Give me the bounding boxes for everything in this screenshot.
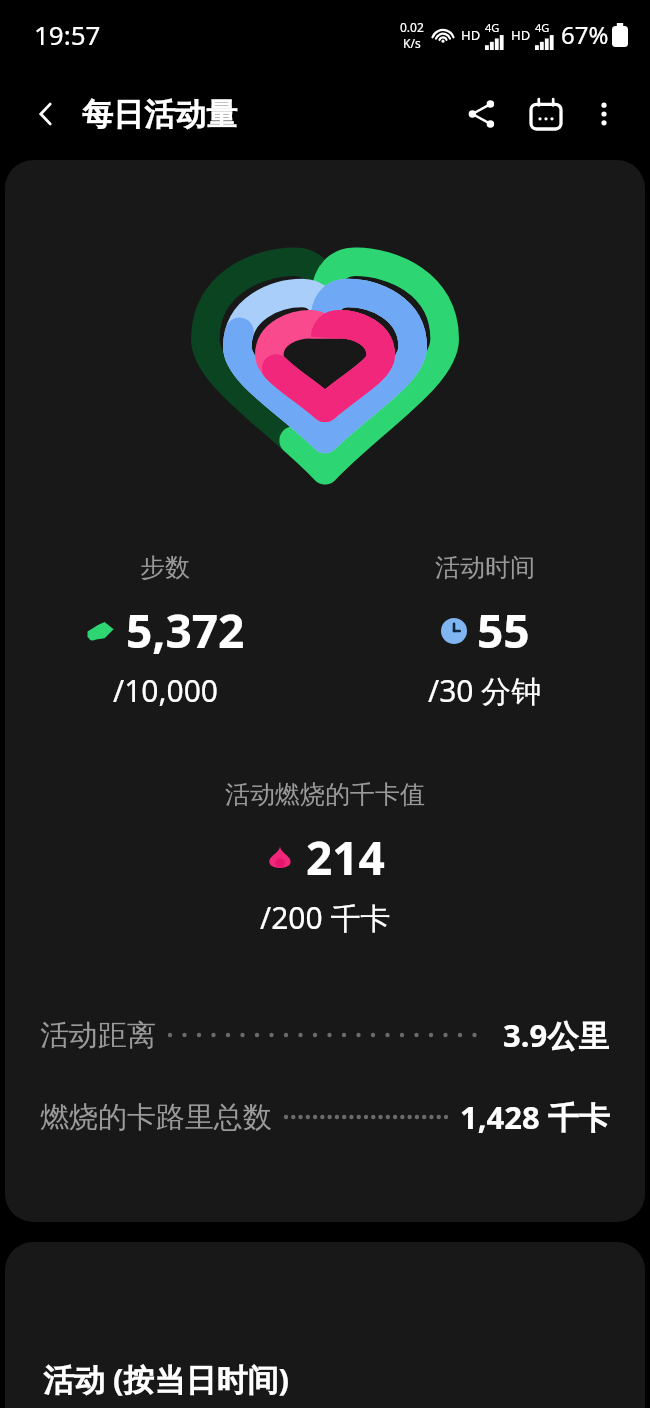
button[interactable]: 活动 (按当日时间)	[5, 1242, 645, 1408]
staticText: /10,000	[113, 670, 218, 711]
staticText: 4G	[485, 20, 500, 35]
staticText: 19:57	[34, 17, 101, 52]
button[interactable]: 步数	[5, 552, 325, 711]
staticText: 活动燃烧的千卡值	[225, 779, 425, 810]
staticText: HD	[511, 26, 531, 44]
button[interactable]: More options	[578, 88, 630, 140]
staticText: 0.02	[400, 19, 424, 35]
staticText: /30 分钟	[428, 670, 542, 711]
staticText: 1,428 千卡	[460, 1096, 610, 1138]
button[interactable]: 活动时间	[325, 552, 645, 711]
staticText: 55	[477, 599, 530, 662]
staticText: 活动时间	[435, 552, 535, 583]
button[interactable]: 活动燃烧的千卡值	[5, 779, 645, 938]
staticText: K/s	[403, 35, 421, 51]
button[interactable]: Calendar	[518, 86, 574, 142]
staticText: 214	[306, 826, 385, 889]
button[interactable]: Back	[20, 88, 72, 140]
staticText: 3.9公里	[503, 1014, 610, 1056]
staticText: 活动距离	[40, 1017, 156, 1054]
button[interactable]: Share	[454, 86, 510, 142]
button[interactable]: 步数	[5, 160, 645, 1222]
button[interactable]: 活动距离	[40, 1008, 610, 1062]
staticText: 67%	[561, 18, 609, 51]
staticText: 活动 (按当日时间)	[43, 1358, 290, 1400]
staticText: 5,372	[126, 599, 245, 662]
staticText: 燃烧的卡路里总数	[40, 1099, 272, 1136]
staticText: /200 千卡	[260, 897, 391, 938]
button[interactable]: 燃烧的卡路里总数	[40, 1090, 610, 1144]
staticText: 每日活动量	[82, 95, 237, 134]
staticText: HD	[461, 26, 481, 44]
staticText: 步数	[140, 552, 190, 583]
staticText: 4G	[535, 20, 550, 35]
